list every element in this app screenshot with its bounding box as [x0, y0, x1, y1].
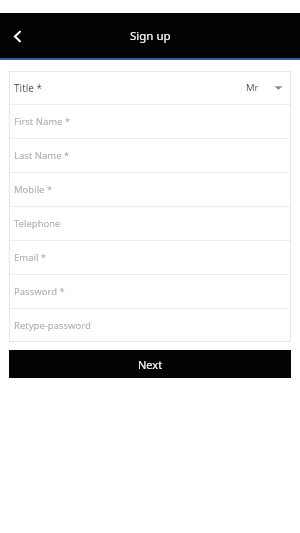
- button[interactable]: Telephone: [9, 207, 291, 240]
- staticText: Email *: [14, 251, 47, 264]
- button[interactable]: Email *: [9, 241, 291, 274]
- button[interactable]: First Name *: [9, 105, 291, 138]
- staticText: Next: [138, 357, 163, 372]
- staticText: Mobile *: [14, 183, 53, 196]
- staticText: Last Name *: [14, 149, 70, 162]
- staticText: First Name *: [14, 115, 71, 128]
- button[interactable]: Title *: [9, 71, 291, 104]
- staticText: Sign up: [130, 28, 171, 44]
- button[interactable]: Back: [0, 19, 34, 53]
- staticText: Retype-password: [14, 319, 91, 332]
- button[interactable]: Next: [9, 350, 291, 378]
- button[interactable]: Mobile *: [9, 173, 291, 206]
- staticText: Mr: [246, 81, 259, 94]
- staticText: Title *: [14, 81, 43, 95]
- staticText: Password *: [14, 285, 65, 298]
- button[interactable]: Last Name *: [9, 139, 291, 172]
- button[interactable]: Retype-password: [9, 309, 291, 342]
- button[interactable]: Password *: [9, 275, 291, 308]
- staticText: Telephone: [14, 217, 61, 230]
